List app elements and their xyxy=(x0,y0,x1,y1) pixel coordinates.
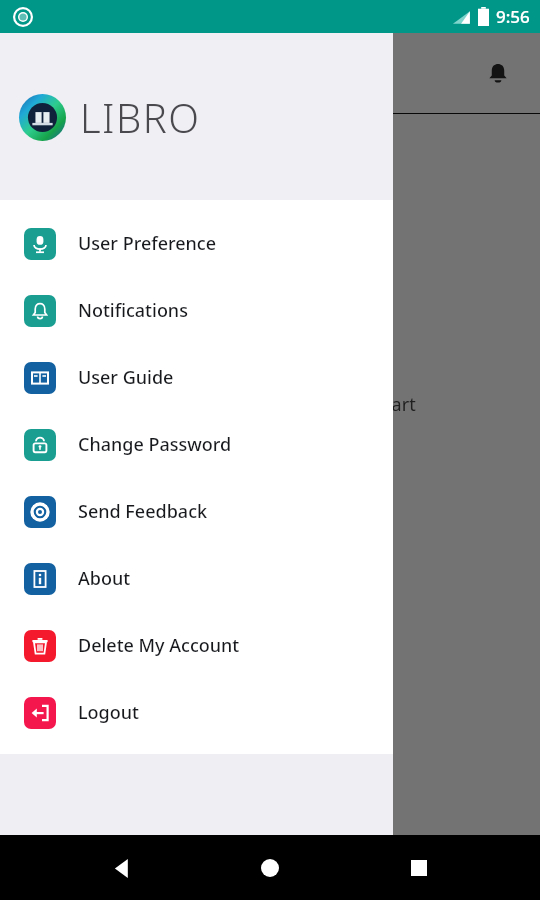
staticText: Send Feedback xyxy=(78,499,208,524)
button[interactable]: Recent apps xyxy=(392,841,446,895)
button[interactable]: Notifications xyxy=(478,53,518,93)
button[interactable]: Change Password xyxy=(0,411,393,478)
staticText: LIBRO xyxy=(80,90,201,144)
staticText: Logout xyxy=(78,700,139,725)
staticText: Tap to start xyxy=(320,392,416,417)
staticText: Change Password xyxy=(78,432,232,457)
button[interactable]: Notifications xyxy=(0,277,393,344)
button[interactable]: User Preference xyxy=(0,210,393,277)
staticText: About xyxy=(78,566,131,591)
staticText: User Guide xyxy=(78,365,174,390)
staticText: Notifications xyxy=(78,298,188,323)
button[interactable]: Home xyxy=(243,841,297,895)
button[interactable]: About xyxy=(0,545,393,612)
button[interactable]: Delete My Account xyxy=(0,612,393,679)
button[interactable]: Logout xyxy=(0,679,393,746)
button[interactable]: User Guide xyxy=(0,344,393,411)
button[interactable]: Send Feedback xyxy=(0,478,393,545)
staticText: User Preference xyxy=(78,231,217,256)
button[interactable]: Close navigation drawer xyxy=(0,33,540,900)
staticText: 9:56 xyxy=(496,5,530,28)
staticText: Delete My Account xyxy=(78,633,240,658)
button[interactable]: Back xyxy=(95,841,149,895)
